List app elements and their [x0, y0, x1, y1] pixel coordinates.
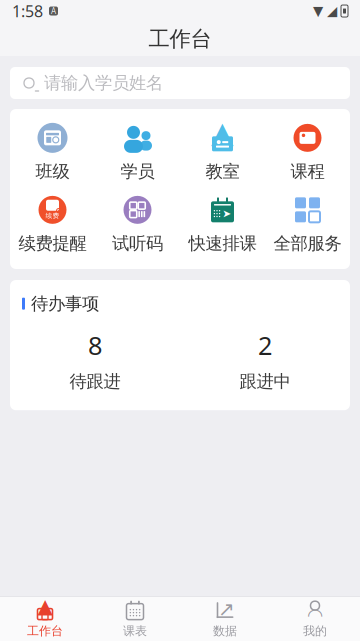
staticText: ◢ [327, 3, 337, 18]
button[interactable]: ◠ [270, 597, 360, 641]
staticText: 全部服务 [273, 233, 341, 254]
button[interactable]: 全部服务 [265, 193, 350, 255]
button[interactable]: 试听码 [95, 193, 180, 255]
staticText: 班级 [35, 161, 69, 182]
staticText: A [51, 6, 56, 16]
staticText: ▲ [37, 595, 52, 617]
staticText [336, 0, 342, 26]
staticText: 教室 [205, 161, 239, 182]
staticText: 快速排课 [188, 233, 256, 254]
staticText: 续费提醒 [18, 233, 86, 254]
staticText: ↗ [218, 598, 235, 620]
button[interactable]: 2 [180, 328, 350, 392]
button[interactable]: 学员 [95, 121, 180, 183]
staticText: 8 [88, 328, 102, 362]
button[interactable]: ▲ [180, 121, 265, 183]
staticText: ▲ [211, 116, 234, 149]
staticText: 工作台 [27, 624, 63, 638]
staticText [322, 0, 328, 26]
button[interactable]: 课程 [265, 121, 350, 183]
staticText: 学员 [120, 161, 154, 182]
button[interactable]: 续费 [10, 193, 95, 255]
button[interactable]: ▲ [0, 597, 90, 641]
staticText: 待办事项 [31, 293, 99, 314]
staticText: 2 [258, 328, 272, 362]
button[interactable]: ↗ [180, 597, 270, 641]
staticText: 请输入学员姓名 [44, 72, 163, 94]
staticText: ▼ [313, 3, 323, 18]
staticText: 数据 [213, 624, 237, 638]
staticText: 我的 [303, 624, 327, 638]
button[interactable]: 班级 [10, 121, 95, 183]
button[interactable]: 8 [10, 328, 180, 392]
staticText: 待跟进 [69, 371, 120, 392]
staticText: 跟进中 [239, 371, 290, 392]
staticText: 课程 [290, 161, 324, 182]
staticText: 续费 [45, 212, 59, 220]
staticText: ◠ [307, 604, 323, 626]
staticText: ➤ [222, 208, 231, 220]
button[interactable]: ➤ [180, 193, 265, 255]
staticText: 1:58 [12, 0, 43, 22]
staticText: 试听码 [112, 233, 163, 254]
button[interactable]: 课表 [90, 597, 180, 641]
staticText: 工作台 [148, 26, 211, 52]
button[interactable]: 请输入学员姓名 [0, 56, 360, 109]
staticText: 课表 [123, 624, 147, 638]
